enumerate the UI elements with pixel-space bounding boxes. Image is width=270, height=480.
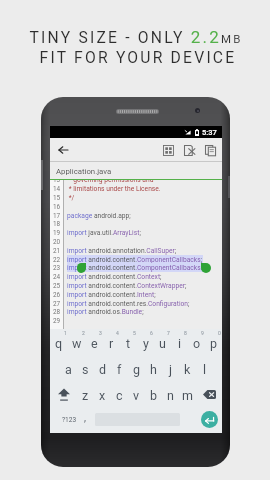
staticText: 4 <box>116 330 119 336</box>
staticText: v <box>133 388 140 403</box>
button[interactable]: Copy <box>200 139 221 161</box>
staticText: o <box>193 336 201 351</box>
button[interactable]: h <box>145 355 162 381</box>
staticText: x <box>99 388 106 403</box>
button[interactable]: 8 <box>171 329 188 355</box>
staticText: z <box>82 388 89 403</box>
staticText: import java.util.ArrayList; <box>67 229 141 237</box>
button[interactable]: c <box>111 381 128 407</box>
staticText: 5 <box>133 330 136 336</box>
button[interactable]: Grid view <box>158 139 179 161</box>
staticText: 8 <box>184 330 187 336</box>
staticText: TINY SIZE - ONLY 2.2MB <box>1 27 270 47</box>
button[interactable]: Selection start handle <box>77 263 86 273</box>
button[interactable]: Shift <box>50 381 77 407</box>
staticText: 24 <box>53 273 61 281</box>
staticText: 29 <box>53 317 61 325</box>
staticText: 1 <box>64 330 67 336</box>
button[interactable]: x <box>94 381 111 407</box>
button[interactable]: g <box>128 355 145 381</box>
staticText: b <box>150 388 158 403</box>
staticText: 7 <box>167 330 170 336</box>
button[interactable]: 9 <box>188 329 205 355</box>
staticText: 19 <box>53 229 61 237</box>
staticText: h <box>150 362 157 377</box>
staticText: 21 <box>53 247 61 255</box>
staticText: j <box>169 362 172 377</box>
staticText: c <box>116 388 123 403</box>
button[interactable]: l <box>196 355 213 381</box>
button[interactable]: v <box>128 381 145 407</box>
staticText: 17 <box>53 212 61 220</box>
staticText: g <box>133 362 141 377</box>
button[interactable]: 1 <box>50 329 68 355</box>
staticText: 23 <box>53 264 61 272</box>
button[interactable]: b <box>145 381 162 407</box>
button[interactable]: ?123 <box>57 407 82 433</box>
staticText: FIT FOR YOUR DEVICE <box>3 48 270 66</box>
button[interactable]: 5 <box>120 329 137 355</box>
button[interactable]: 6 <box>137 329 154 355</box>
button[interactable]: s <box>77 355 94 381</box>
staticText: u <box>159 336 166 351</box>
staticText: f <box>117 362 122 377</box>
staticText: import android.content.ComponentCallback… <box>67 264 206 272</box>
button[interactable]: Back <box>55 142 71 158</box>
staticText: import android.content.Context; <box>67 273 162 281</box>
button[interactable]: Application.java <box>56 162 112 180</box>
button[interactable]: z <box>77 381 94 407</box>
staticText: 15 <box>53 194 61 202</box>
staticText: import android.content.Intent; <box>67 291 156 299</box>
button[interactable]: a <box>60 355 77 381</box>
staticText: , <box>84 412 86 424</box>
button[interactable]: Enter <box>201 411 218 428</box>
staticText: 27 <box>53 300 61 308</box>
staticText: Application.java <box>56 167 112 176</box>
staticText: 22 <box>53 256 61 264</box>
staticText: ?123 <box>62 416 77 424</box>
staticText: 18 <box>53 220 61 228</box>
staticText: 0 <box>218 330 221 336</box>
button[interactable]: d <box>94 355 111 381</box>
staticText: a <box>65 362 72 377</box>
button[interactable]: n <box>162 381 179 407</box>
staticText: m <box>182 388 193 403</box>
staticText: import android.content.ContextWrapper; <box>67 282 187 290</box>
staticText: import android.os.Bundle; <box>67 308 144 316</box>
button[interactable]: j <box>162 355 179 381</box>
staticText: n <box>167 388 174 403</box>
staticText: 16 <box>53 203 61 211</box>
staticText: q <box>55 336 63 351</box>
staticText: w <box>72 336 82 351</box>
button[interactable]: 3 <box>86 329 103 355</box>
staticText: e <box>91 336 98 351</box>
button[interactable]: m <box>179 381 196 407</box>
staticText: r <box>109 336 114 351</box>
staticText: 14 <box>53 185 61 193</box>
staticText: i <box>178 336 182 351</box>
button[interactable]: 0 <box>205 329 222 355</box>
staticText: l <box>203 362 207 377</box>
staticText: 26 <box>53 291 61 299</box>
button[interactable]: 7 <box>154 329 171 355</box>
staticText: package android.app; <box>67 212 131 220</box>
staticText: 2 <box>82 330 85 336</box>
button[interactable]: k <box>179 355 196 381</box>
staticText: 13 <box>53 176 61 184</box>
staticText: k <box>184 362 191 377</box>
button[interactable]: Selection end handle <box>201 263 211 273</box>
staticText: import android.content.ComponentCallback… <box>67 256 203 264</box>
button[interactable]: 2 <box>68 329 86 355</box>
button[interactable]: 4 <box>103 329 120 355</box>
staticText: */ <box>67 194 75 202</box>
staticText: d <box>99 362 107 377</box>
button[interactable]: , <box>75 407 94 433</box>
button[interactable]: f <box>111 355 128 381</box>
staticText: 25 <box>53 282 61 290</box>
staticText: t <box>126 336 131 351</box>
button[interactable]: Close file <box>179 139 200 161</box>
button[interactable]: Backspace <box>196 381 222 407</box>
staticText: y <box>143 336 149 351</box>
staticText: * limitations under the License. <box>67 185 161 193</box>
